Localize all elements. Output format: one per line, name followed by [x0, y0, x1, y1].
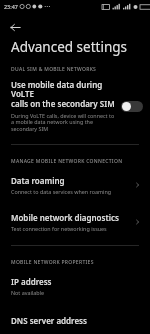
button[interactable]: DNS server address [0, 311, 150, 334]
button[interactable]: Back [5, 17, 25, 37]
staticText: Not available [11, 289, 45, 296]
button[interactable]: Data roaming [0, 171, 150, 199]
staticText: Data roaming [11, 175, 65, 186]
staticText: MANAGE MOBILE NETWORK CONNECTION [11, 158, 123, 165]
button[interactable]: Toggle mobile data during VoLTE calls [121, 101, 143, 112]
staticText: Advanced settings [11, 38, 128, 56]
button[interactable]: IP address [0, 272, 150, 300]
button[interactable]: Mobile network diagnostics [0, 208, 150, 236]
staticText: IP address [11, 276, 52, 287]
staticText: Connect to data services when roaming [11, 188, 112, 195]
staticText: Test connection for networking issues [11, 225, 107, 232]
staticText: 23:47 [4, 3, 18, 10]
staticText: Mobile network diagnostics [11, 212, 119, 223]
staticText: DUAL SIM & MOBILE NETWORKS [11, 66, 97, 73]
staticText: MOBILE NETWORK PROPERTIES [11, 259, 94, 266]
staticText: DNS server address [11, 315, 87, 326]
staticText: Use mobile data during VoLTE calls on th… [11, 79, 117, 110]
button[interactable]: Use mobile data during VoLTE calls on th… [0, 79, 150, 133]
staticText: During VoLTE calls, device will connect … [11, 112, 117, 133]
